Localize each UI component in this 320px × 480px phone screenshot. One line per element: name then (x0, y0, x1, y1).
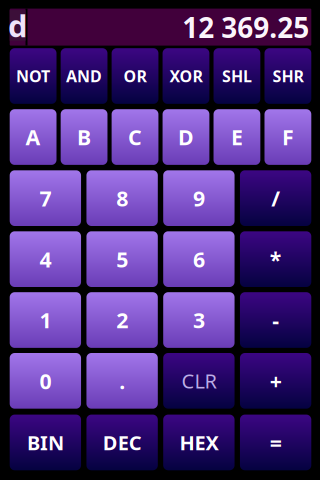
staticText: HEX (179, 429, 218, 456)
staticText: OR (123, 65, 146, 87)
button[interactable]: SHL (213, 48, 260, 104)
staticText: DEC (103, 429, 142, 456)
staticText: XOR (169, 65, 202, 87)
staticText: AND (66, 65, 102, 87)
staticText: SHL (222, 65, 252, 87)
staticText: CLR (181, 368, 216, 394)
button[interactable]: + (240, 353, 311, 409)
staticText: 4 (39, 245, 51, 273)
button[interactable]: = (240, 415, 311, 470)
button[interactable]: BIN (10, 415, 81, 470)
staticText: = (270, 428, 282, 457)
staticText: 7 (39, 184, 51, 212)
staticText: NOT (16, 65, 50, 87)
button[interactable]: . (86, 353, 158, 409)
button[interactable]: 3 (163, 292, 235, 348)
staticText: * (270, 245, 282, 273)
button[interactable]: 5 (86, 231, 158, 287)
button[interactable]: HEX (163, 415, 235, 470)
staticText: . (119, 367, 125, 395)
staticText: - (272, 306, 279, 334)
button[interactable]: A (10, 109, 56, 165)
button[interactable]: OR (112, 48, 158, 104)
button[interactable]: C (112, 109, 158, 165)
button[interactable]: 8 (86, 170, 158, 226)
staticText: 8 (116, 184, 128, 212)
staticText: A (26, 123, 41, 151)
button[interactable]: E (213, 109, 260, 165)
staticText: B (77, 123, 91, 151)
staticText: E (231, 123, 243, 151)
staticText: SHR (272, 65, 303, 87)
button[interactable]: 9 (163, 170, 235, 226)
button[interactable]: 1 (10, 292, 81, 348)
button[interactable]: NOT (10, 48, 56, 104)
staticText: 1 (39, 306, 51, 334)
staticText: 12 369.25 (182, 8, 309, 46)
staticText: 5 (116, 245, 128, 273)
staticText: 3 (193, 306, 205, 334)
button[interactable]: CLR (163, 353, 235, 409)
button[interactable]: - (240, 292, 311, 348)
staticText: F (282, 123, 294, 151)
staticText: 6 (193, 245, 205, 273)
button[interactable]: 4 (10, 231, 81, 287)
staticText: BIN (27, 429, 64, 456)
button[interactable]: * (240, 231, 311, 287)
staticText: 2 (116, 306, 128, 334)
button[interactable]: 2 (86, 292, 158, 348)
button[interactable]: / (240, 170, 311, 226)
button[interactable]: XOR (163, 48, 209, 104)
staticText: 9 (193, 184, 205, 212)
button[interactable]: AND (61, 48, 107, 104)
staticText: D (178, 123, 194, 151)
button[interactable]: D (163, 109, 209, 165)
staticText: / (271, 184, 280, 212)
button[interactable]: F (264, 109, 311, 165)
button[interactable]: 7 (10, 170, 81, 226)
button[interactable]: SHR (264, 48, 311, 104)
staticText: + (270, 367, 282, 395)
button[interactable]: 0 (10, 353, 81, 409)
button[interactable]: DEC (86, 415, 158, 470)
staticText: 0 (39, 367, 51, 395)
staticText: d (8, 5, 27, 46)
button[interactable]: 6 (163, 231, 235, 287)
staticText: C (128, 123, 142, 151)
button[interactable]: B (61, 109, 107, 165)
